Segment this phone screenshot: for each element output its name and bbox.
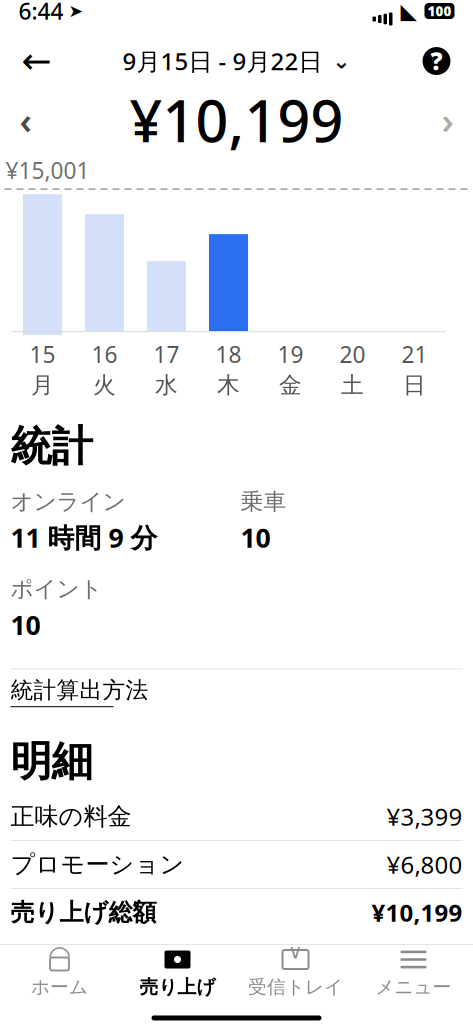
staticText: 金 <box>279 371 302 399</box>
staticText: ¥15,001 <box>5 155 89 185</box>
staticText: 売り上げ総額 <box>10 898 156 927</box>
button[interactable]: Back <box>14 37 58 85</box>
button[interactable]: Previous week <box>6 93 44 147</box>
staticText: メニュー <box>375 975 451 998</box>
staticText: 15 <box>29 339 55 369</box>
staticText: 21 <box>401 339 427 369</box>
staticText: 17 <box>153 339 179 369</box>
button[interactable]: メニュー <box>354 945 472 1001</box>
staticText: 乗車 <box>240 488 286 516</box>
staticText: ◠ <box>48 940 71 970</box>
staticText: 水 <box>155 371 178 399</box>
staticText: ポイント <box>10 575 102 603</box>
button[interactable]: 9月15日 - 9月22日 <box>118 37 354 85</box>
staticText: 受信トレイ <box>248 975 343 998</box>
button[interactable]: ∨ <box>236 945 354 1001</box>
staticText: 10 <box>10 607 40 642</box>
staticText: 統計算出方法 <box>10 676 148 704</box>
button[interactable]: ◠ <box>0 945 118 1001</box>
staticText: 火 <box>93 371 116 399</box>
staticText: 18 <box>215 339 241 369</box>
staticText: 20 <box>339 339 365 369</box>
button[interactable]: 売り上げ <box>118 945 236 1001</box>
staticText: ➤ <box>68 1 83 21</box>
button[interactable]: Help <box>414 37 458 85</box>
staticText: ¥10,199 <box>129 82 343 158</box>
staticText: 日 <box>403 371 426 399</box>
staticText: ← <box>21 41 51 81</box>
staticText: 100 <box>427 2 451 20</box>
staticText: ∨ <box>288 940 303 963</box>
staticText: ホーム <box>31 975 88 998</box>
staticText: 11 時間 9 分 <box>10 520 157 555</box>
staticText: ◣ <box>400 0 416 23</box>
staticText: 6:44 <box>18 0 63 26</box>
staticText: ? <box>430 45 442 77</box>
staticText: 土 <box>341 371 364 399</box>
staticText: 9月15日 - 9月22日 <box>122 45 322 77</box>
staticText: ¥6,800 <box>386 848 462 880</box>
staticText: ‹ <box>19 96 31 144</box>
staticText: 月 <box>31 371 54 399</box>
staticText: ¥3,399 <box>386 800 462 832</box>
button[interactable]: 統計算出方法 <box>10 669 148 714</box>
staticText: 16 <box>91 339 117 369</box>
button[interactable]: Next week <box>428 93 466 147</box>
staticText: オンライン <box>10 488 125 516</box>
staticText: 売り上げ <box>139 975 215 998</box>
staticText: 統計 <box>10 421 92 472</box>
staticText: › <box>441 96 453 144</box>
staticText: 19 <box>277 339 303 369</box>
staticText: プロモーション <box>10 850 184 879</box>
staticText: ¥10,199 <box>371 896 462 928</box>
staticText: ⌄ <box>332 49 350 73</box>
staticText: 10 <box>240 520 270 555</box>
staticText: 木 <box>217 371 240 399</box>
staticText: 明細 <box>10 736 92 787</box>
staticText: 正味の料金 <box>10 802 131 831</box>
